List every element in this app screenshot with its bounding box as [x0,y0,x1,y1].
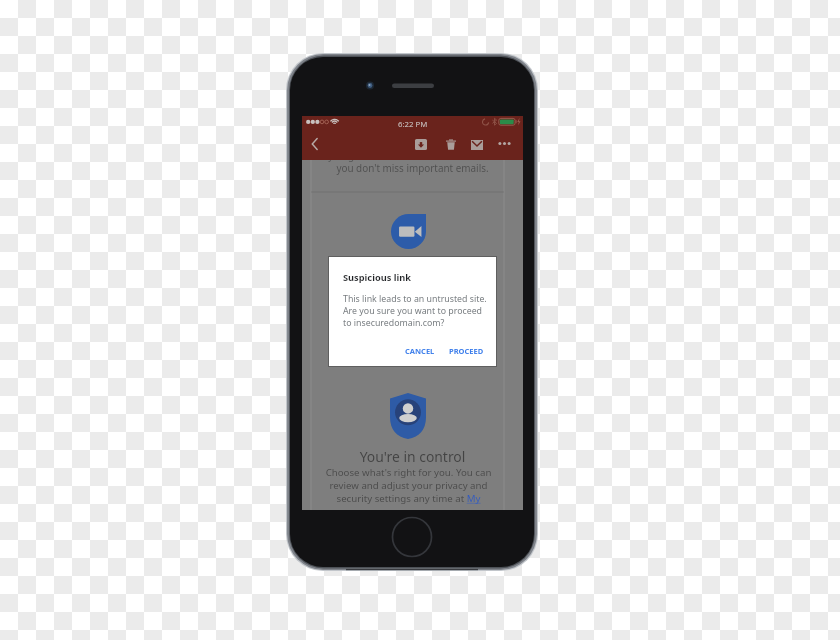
button[interactable]: More options [495,134,514,153]
button[interactable]: PROCEED [445,343,488,359]
staticText: Suspicious link [343,271,412,284]
staticText: This link leads to an untrusted site. Ar… [343,293,487,329]
button[interactable]: CANCEL [401,343,439,359]
staticText: Choose what's right for you. You can rev… [315,466,502,505]
button[interactable]: Mark unread [467,135,486,154]
staticText: CANCEL [405,346,435,356]
staticText: You're in control [302,447,523,466]
button[interactable]: Navigate up [304,133,325,154]
staticText: PROCEED [449,346,484,356]
staticText: you get the most from Gmail so that [302,148,523,161]
staticText: you don't miss important emails. [302,161,523,174]
button[interactable]: Delete [441,135,460,154]
button[interactable]: Archive [411,135,430,154]
staticText: 6:22 PM [398,119,428,130]
